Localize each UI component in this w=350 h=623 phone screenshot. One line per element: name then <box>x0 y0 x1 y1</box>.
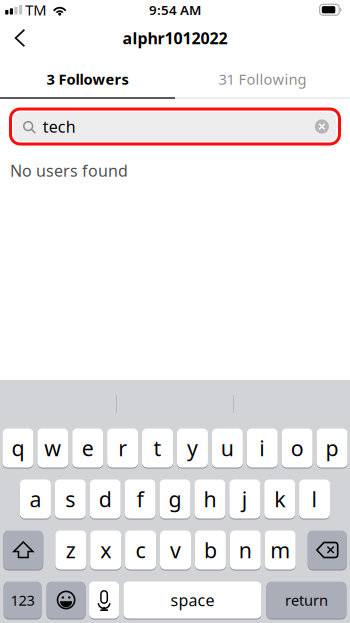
staticText: p <box>325 434 338 462</box>
staticText: f <box>137 485 144 513</box>
staticText: w <box>44 434 61 462</box>
staticText: z <box>66 536 76 564</box>
staticText: 3 Followers <box>46 69 128 89</box>
button[interactable]: j <box>229 479 260 519</box>
button[interactable]: k <box>264 479 295 519</box>
staticText: x <box>100 536 111 564</box>
staticText: e <box>82 434 94 462</box>
button[interactable]: p <box>316 428 347 468</box>
button[interactable]: f <box>125 479 156 519</box>
button[interactable]: s <box>55 479 86 519</box>
button[interactable]: n <box>230 530 261 570</box>
button[interactable]: Back <box>0 19 40 57</box>
button[interactable]: z <box>55 530 86 570</box>
staticText: r <box>118 434 127 462</box>
button[interactable]: d <box>90 479 121 519</box>
button[interactable]: v <box>160 530 191 570</box>
staticText: a <box>29 485 41 513</box>
button[interactable]: e <box>72 428 103 468</box>
button[interactable]: o <box>282 428 313 468</box>
button[interactable]: i <box>247 428 278 468</box>
button[interactable]: h <box>194 479 225 519</box>
button[interactable]: space <box>123 581 261 619</box>
button[interactable]: q <box>2 428 33 468</box>
button[interactable]: Dictation <box>89 581 119 619</box>
staticText: b <box>204 536 217 564</box>
button[interactable]: c <box>125 530 156 570</box>
button[interactable]: 31 Following <box>175 57 350 97</box>
button[interactable]: t <box>142 428 173 468</box>
staticText: v <box>170 536 181 564</box>
button[interactable]: Emoji <box>47 581 86 619</box>
staticText: TM <box>25 0 46 19</box>
staticText: u <box>221 434 234 462</box>
staticText: 9:54 AM <box>149 1 201 19</box>
button[interactable]: Delete <box>308 530 347 570</box>
staticText: n <box>239 536 252 564</box>
staticText: return <box>285 590 328 610</box>
staticText: m <box>270 536 290 564</box>
staticText: l <box>312 485 318 513</box>
button[interactable]: a <box>20 479 51 519</box>
button[interactable]: w <box>37 428 68 468</box>
staticText: h <box>203 485 216 513</box>
staticText: y <box>187 434 198 462</box>
button[interactable]: Shift <box>3 530 43 570</box>
staticText: t <box>153 434 161 462</box>
staticText: No users found <box>10 160 128 181</box>
staticText: space <box>170 589 214 611</box>
button[interactable]: b <box>195 530 226 570</box>
button[interactable]: m <box>265 530 296 570</box>
button[interactable]: u <box>212 428 243 468</box>
staticText: d <box>99 485 112 513</box>
staticText: o <box>291 434 304 462</box>
staticText: k <box>274 485 285 513</box>
staticText: 123 <box>11 590 35 610</box>
button[interactable]: g <box>159 479 190 519</box>
button[interactable]: 123 <box>4 581 42 619</box>
button[interactable]: Clear text <box>315 119 329 134</box>
button[interactable]: y <box>177 428 208 468</box>
button[interactable]: l <box>299 479 330 519</box>
staticText: c <box>136 536 146 564</box>
staticText: tech <box>43 116 76 137</box>
button[interactable]: 3 Followers <box>0 57 175 97</box>
button[interactable]: r <box>107 428 138 468</box>
staticText: j <box>242 485 248 513</box>
staticText: alphr1012022 <box>122 27 227 49</box>
staticText: q <box>11 434 24 462</box>
staticText: 31 Following <box>218 69 306 89</box>
staticText: g <box>168 485 181 513</box>
staticText: s <box>65 485 75 513</box>
button[interactable]: return <box>266 581 346 619</box>
button[interactable]: x <box>90 530 121 570</box>
staticText: i <box>259 434 265 462</box>
